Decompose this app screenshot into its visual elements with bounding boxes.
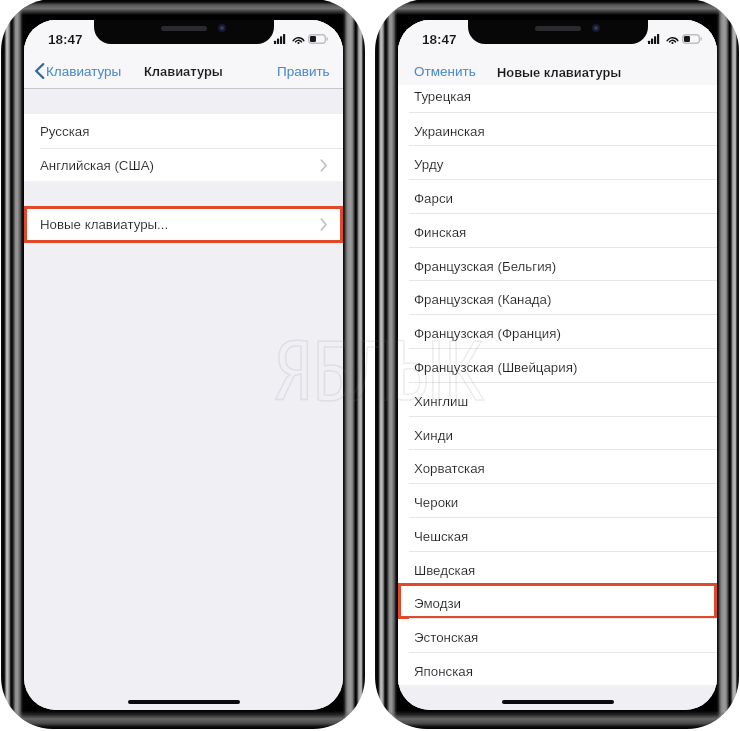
staticText: Французская (Канада) xyxy=(414,292,552,307)
staticText: Французская (Бельгия) xyxy=(414,259,557,274)
staticText: Фарси xyxy=(414,191,453,206)
button[interactable]: Фарси xyxy=(398,179,717,213)
button[interactable]: Эстонская xyxy=(398,618,717,652)
staticText: Клавиатуры xyxy=(144,64,223,78)
staticText: Японская xyxy=(414,664,473,679)
staticText: Урду xyxy=(414,157,444,172)
button[interactable]: Украинская xyxy=(398,112,717,146)
button[interactable]: Чешская xyxy=(398,517,717,551)
staticText: Русская xyxy=(40,124,90,139)
staticText: Новые клавиатуры xyxy=(497,65,622,79)
staticText: Английская (США) xyxy=(40,158,154,173)
staticText: Эмодзи xyxy=(414,596,461,611)
button[interactable]: Новые клавиатуры... xyxy=(24,206,343,243)
button[interactable]: Французская (Франция) xyxy=(398,314,717,348)
staticText: Хинди xyxy=(414,428,453,443)
staticText: Хинглиш xyxy=(414,394,469,409)
button[interactable]: Японская xyxy=(398,652,717,686)
staticText: Править xyxy=(277,64,330,79)
button[interactable]: Урду xyxy=(398,145,717,179)
button[interactable]: Отменить xyxy=(414,64,476,79)
button[interactable]: Шведская xyxy=(398,551,717,585)
staticText: Украинская xyxy=(414,124,485,139)
button[interactable]: Эмодзи xyxy=(398,584,717,618)
button[interactable]: Английская (США) xyxy=(24,149,343,181)
button[interactable]: Хорватская xyxy=(398,449,717,483)
button[interactable]: Французская (Швейцария) xyxy=(398,348,717,382)
staticText: 18:47 xyxy=(422,32,457,47)
staticText: Клавиатуры xyxy=(46,64,122,79)
button[interactable]: Французская (Бельгия) xyxy=(398,247,717,281)
staticText: Финская xyxy=(414,225,467,240)
staticText: Отменить xyxy=(414,64,476,79)
staticText: Чероки xyxy=(414,495,459,510)
staticText: Турецкая xyxy=(414,89,471,104)
button[interactable]: Чероки xyxy=(398,483,717,517)
staticText: Французская (Франция) xyxy=(414,326,561,341)
button[interactable]: Русская xyxy=(24,114,343,148)
staticText: Чешская xyxy=(414,529,469,544)
button[interactable]: Турецкая xyxy=(398,85,717,112)
button[interactable]: Править xyxy=(277,64,330,79)
staticText: Французская (Швейцария) xyxy=(414,360,578,375)
button[interactable]: Клавиатуры xyxy=(34,63,122,79)
staticText: ЯБЛЫК xyxy=(274,314,486,423)
button[interactable]: Финская xyxy=(398,213,717,247)
staticText: 18:47 xyxy=(48,32,83,47)
staticText: Шведская xyxy=(414,563,476,578)
staticText: Хорватская xyxy=(414,461,485,476)
button[interactable]: Хинди xyxy=(398,416,717,450)
button[interactable]: Французская (Канада) xyxy=(398,280,717,314)
staticText: Новые клавиатуры... xyxy=(40,217,169,232)
staticText: Эстонская xyxy=(414,630,479,645)
button[interactable]: Хинглиш xyxy=(398,382,717,416)
